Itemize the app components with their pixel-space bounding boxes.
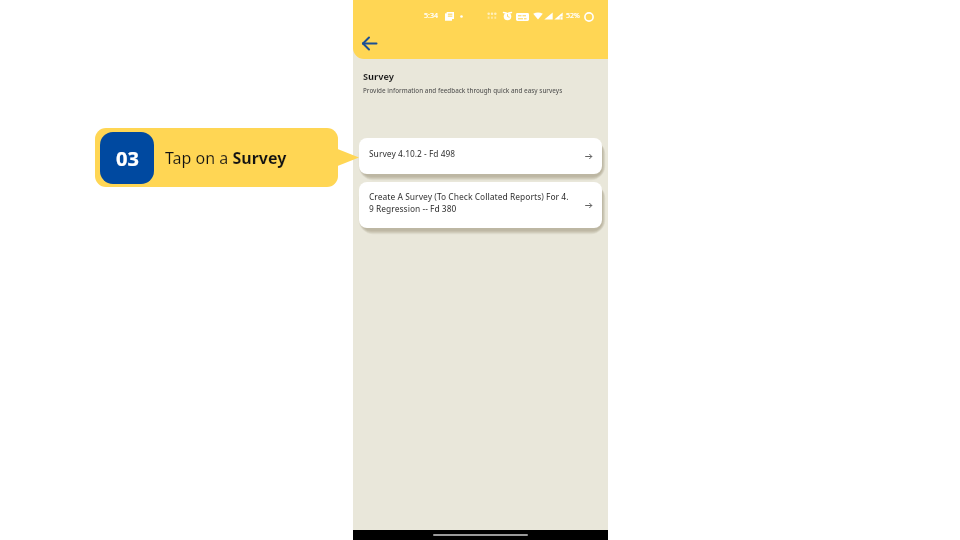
button[interactable]: Create A Survey (To Check Collated Repor…	[359, 182, 602, 228]
staticText: 5:34	[424, 11, 438, 21]
staticText: 9 Regression -- Fd 380	[369, 203, 457, 214]
staticText: Tap on a Survey	[165, 147, 287, 169]
staticText: Create A Survey (To Check Collated Repor…	[369, 191, 569, 202]
staticText: Provide information and feedback through…	[363, 86, 563, 95]
staticText: Survey	[363, 70, 394, 83]
button[interactable]: Back	[359, 33, 380, 54]
button[interactable]: 03	[95, 128, 338, 187]
staticText: Survey 4.10.2 - Fd 498	[369, 148, 456, 159]
button[interactable]: Survey 4.10.2 - Fd 498	[359, 138, 602, 174]
staticText: 03	[116, 145, 139, 172]
staticText: 52%	[566, 11, 580, 21]
